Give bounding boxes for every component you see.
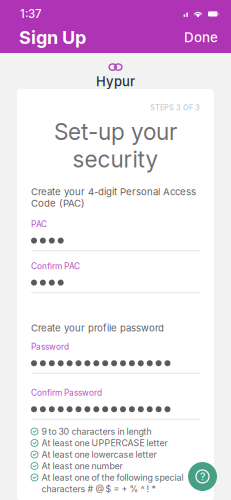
staticText: ? (200, 470, 205, 483)
staticText: Set-up your (54, 118, 177, 145)
staticText: Create your 4-digit Personal Access Code… (31, 186, 196, 209)
staticText: Create your profile password (31, 322, 164, 334)
staticText: Confirm Password (31, 388, 102, 398)
staticText: Hypur (96, 74, 135, 89)
button[interactable]: Done (180, 24, 222, 50)
staticText: Confirm PAC (31, 261, 80, 271)
staticText: At least one lowercase letter (41, 449, 156, 460)
staticText: PAC (31, 219, 47, 229)
staticText: Password (31, 342, 69, 352)
staticText: Sign Up (19, 27, 86, 48)
staticText: STEPS 3 OF 3 (150, 103, 200, 112)
staticText: At least one UPPERCASE letter (41, 438, 167, 448)
staticText: 9 to 30 characters in length (41, 426, 151, 437)
staticText: Done (184, 29, 218, 45)
staticText: 1:37 (20, 7, 42, 21)
staticText: characters # @ $ = + % ^ ! * (41, 484, 155, 494)
staticText: At least one number (41, 461, 122, 471)
staticText: At least one of the following special (41, 472, 183, 483)
staticText: security (72, 145, 158, 173)
button[interactable]: Help (188, 462, 217, 491)
